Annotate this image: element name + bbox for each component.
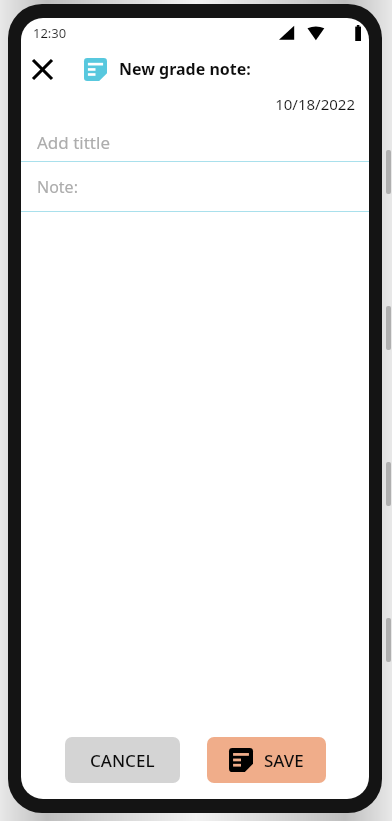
- button[interactable]: Close: [21, 48, 63, 90]
- staticText: Note:: [37, 176, 78, 198]
- staticText: New grade note:: [119, 58, 251, 80]
- staticText: 10/18/2022: [275, 94, 355, 114]
- button[interactable]: Add tittle: [21, 124, 369, 161]
- staticText: Add tittle: [37, 131, 110, 154]
- staticText: CANCEL: [90, 749, 155, 772]
- button[interactable]: CANCEL: [65, 737, 180, 783]
- button[interactable]: SAVE: [207, 737, 326, 783]
- staticText: 12:30: [33, 24, 67, 42]
- staticText: SAVE: [264, 749, 304, 772]
- button[interactable]: Note:: [21, 162, 369, 211]
